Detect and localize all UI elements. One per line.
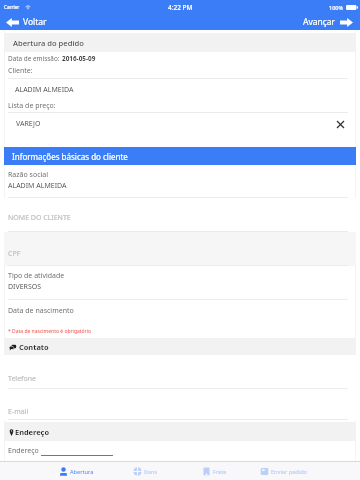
button[interactable]: Telefone <box>4 355 356 389</box>
button[interactable]: Data de nascimento <box>4 300 356 321</box>
staticText: ALADIM ALMEIDA <box>8 181 67 191</box>
button[interactable]: Abertura do pedido <box>4 33 356 52</box>
staticText: Telefone <box>8 374 37 384</box>
staticText: Endereço <box>15 427 50 437</box>
button[interactable]: ALADIM ALMEIDA <box>4 79 356 100</box>
button[interactable]: E-mail <box>4 389 356 420</box>
button[interactable]: Frete <box>180 462 249 480</box>
staticText: Voltar <box>23 16 47 28</box>
staticText: Carrier <box>4 4 20 10</box>
staticText: 2016-05-09 <box>62 54 96 63</box>
button[interactable]: Limpar <box>337 121 344 128</box>
staticText: Tipo de atividade <box>8 271 65 281</box>
staticText: 4:22 PM <box>168 3 193 12</box>
staticText: Data de nascimento <box>8 306 74 316</box>
staticText: E-mail <box>8 407 29 417</box>
staticText: ALADIM ALMEIDA <box>15 85 74 95</box>
button[interactable]: Voltar <box>0 16 55 28</box>
button[interactable]: Endereço <box>4 422 356 441</box>
staticText: Abertura do pedido <box>13 38 84 48</box>
staticText: Cliente: <box>8 66 33 76</box>
staticText: Razão social <box>8 170 49 180</box>
staticText: Contato <box>19 342 49 352</box>
staticText: Itens <box>144 468 158 476</box>
staticText: Data de emissão: <box>8 54 62 63</box>
button[interactable]: Informações básicas do cliente <box>4 147 356 165</box>
staticText: 100% <box>329 4 344 11</box>
staticText: Abertura <box>70 468 94 476</box>
staticText: Lista de preço: <box>8 101 56 111</box>
button[interactable]: Endereço <box>4 441 356 459</box>
button[interactable]: Avançar <box>295 16 360 28</box>
button[interactable]: Itens <box>111 462 180 480</box>
button[interactable]: Tipo de atividade <box>4 266 356 300</box>
staticText: NOME DO CLIENTE <box>8 213 71 223</box>
button[interactable]: Enviar pedido <box>249 462 318 480</box>
staticText: DIVERSOS <box>8 282 42 292</box>
staticText: CPF <box>8 249 21 259</box>
button[interactable]: NOME DO CLIENTE <box>4 198 356 232</box>
staticText: Informações básicas do cliente <box>12 151 128 162</box>
staticText: Frete <box>213 468 227 476</box>
button[interactable]: Abertura <box>42 462 111 480</box>
button[interactable]: VAREJO <box>4 113 356 135</box>
staticText: Endereço <box>8 446 39 456</box>
staticText: Avançar <box>303 16 336 28</box>
button[interactable]: Razão social <box>4 165 356 198</box>
staticText: * Data de nascimento é obrigatório <box>8 328 91 335</box>
button[interactable]: Contato <box>4 338 356 355</box>
staticText: VAREJO <box>16 119 41 129</box>
staticText: Enviar pedido <box>271 468 308 476</box>
